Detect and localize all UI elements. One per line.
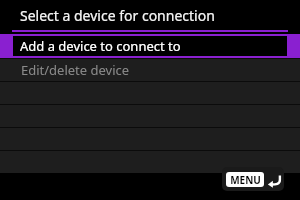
- staticText: Add a device to connect to: [20, 37, 181, 55]
- staticText: Edit/delete device: [21, 61, 130, 79]
- staticText: Select a device for connection: [20, 6, 215, 25]
- button[interactable]: [0, 151, 300, 173]
- button[interactable]: Add a device to connect to: [0, 34, 300, 58]
- button[interactable]: Edit/delete device: [0, 59, 300, 81]
- button[interactable]: MENU back: [222, 167, 284, 191]
- staticText: MENU: [230, 173, 261, 187]
